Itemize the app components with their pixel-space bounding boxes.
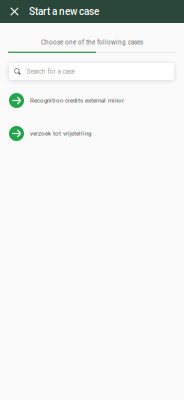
- staticText: Choose one of the following cases: [41, 38, 143, 46]
- staticText: verzoek tot vrijstelling: [30, 130, 91, 137]
- button[interactable]: verzoek tot vrijstelling: [0, 117, 184, 150]
- button[interactable]: Recognition credits external minor: [0, 84, 184, 117]
- staticText: Start a new case: [29, 6, 99, 17]
- button[interactable]: Search for a case: [9, 63, 174, 80]
- button[interactable]: Choose one of the following cases: [0, 23, 184, 53]
- staticText: Search for a case: [26, 68, 74, 75]
- button[interactable]: Close: [0, 0, 29, 23]
- staticText: Recognition credits external minor: [30, 97, 124, 104]
